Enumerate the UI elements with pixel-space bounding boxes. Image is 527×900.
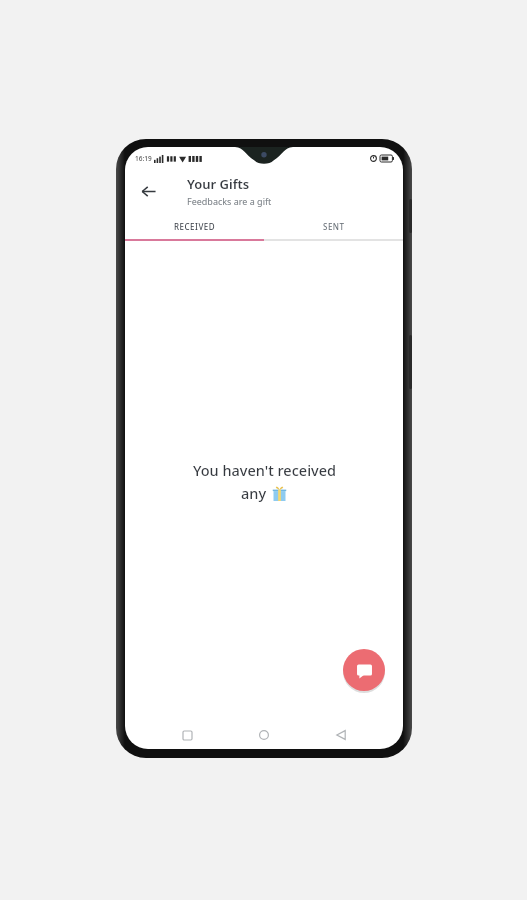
staticText: any [241,483,267,503]
staticText: You haven't received [193,460,336,480]
staticText: 16:19 [135,154,152,163]
button[interactable]: Recent apps [172,721,202,749]
staticText: Your Gifts [187,175,250,193]
staticText: Feedbacks are a gift [187,195,272,207]
button[interactable]: Back [131,174,165,208]
staticText: SENT [323,221,345,232]
button[interactable]: Home [249,721,279,749]
button[interactable]: Back [326,721,356,749]
staticText: RECEIVED [174,221,216,232]
button[interactable]: SENT [264,213,403,239]
button[interactable]: New message [343,649,385,691]
button[interactable]: RECEIVED [125,213,264,239]
